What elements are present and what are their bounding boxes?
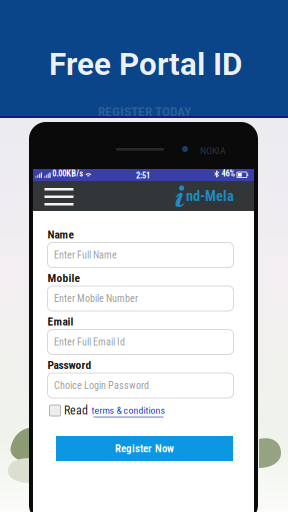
staticText: Password bbox=[47, 358, 91, 372]
button[interactable]: Choice Login Password bbox=[47, 373, 233, 398]
button[interactable]: nd-Mela bbox=[174, 184, 234, 204]
staticText: Read bbox=[64, 403, 88, 418]
button[interactable]: Read bbox=[49, 403, 165, 417]
staticText: Enter Full Email Id bbox=[54, 336, 125, 348]
staticText: nd-Mela bbox=[186, 188, 234, 204]
staticText: Email bbox=[47, 315, 73, 328]
button[interactable]: Register Now bbox=[56, 436, 233, 461]
staticText: REGISTER TODAY bbox=[98, 104, 191, 120]
staticText: NOKIA bbox=[200, 145, 226, 157]
button[interactable]: Open navigation menu bbox=[44, 188, 73, 205]
staticText: Enter Mobile Number bbox=[54, 293, 138, 304]
button[interactable]: Enter Mobile Number bbox=[47, 286, 233, 311]
staticText: 2:51 bbox=[136, 170, 150, 180]
staticText: Name bbox=[47, 228, 73, 241]
staticText: Mobile bbox=[47, 271, 79, 285]
staticText: Choice Login Password bbox=[54, 380, 149, 391]
button[interactable]: Enter Full Email Id bbox=[47, 329, 233, 354]
staticText: Free Portal ID bbox=[49, 46, 242, 83]
staticText: Register Now bbox=[115, 442, 174, 455]
staticText: 0.00KB/s bbox=[52, 169, 83, 179]
staticText: terms & conditions bbox=[91, 405, 165, 416]
staticText: 46% bbox=[221, 169, 234, 179]
button[interactable]: Enter Full Name bbox=[47, 242, 233, 267]
staticText: Enter Full Name bbox=[54, 249, 117, 261]
